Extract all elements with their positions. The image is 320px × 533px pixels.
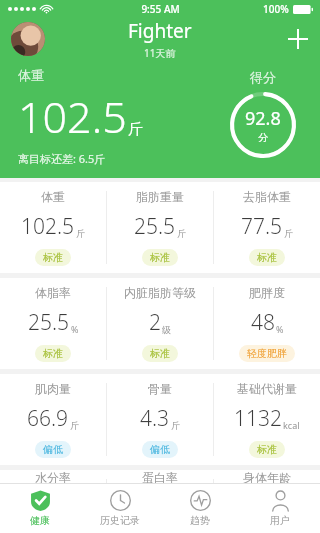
staticText: 11天前 [144,46,176,60]
staticText: 55.2 [28,493,70,522]
staticText: 用户 [270,514,290,527]
button[interactable]: 历史记录 [80,484,160,533]
staticText: 标准 [150,251,170,264]
staticText: 脂肪重量 [136,189,184,204]
staticText: 48 [251,308,275,337]
button[interactable]: Health score 92.8 [230,92,296,158]
staticText: 趋势 [190,514,210,527]
button[interactable]: 肥胖度 [214,278,320,369]
staticText: 标准 [43,251,63,264]
staticText: 标准 [150,347,170,360]
button[interactable]: 趋势 [160,484,240,533]
button[interactable]: 身体年龄 [214,470,320,533]
staticText: 102.5 [21,212,75,241]
staticText: 4.3 [140,404,170,433]
staticText: 100% [263,2,289,16]
staticText: 内脏脂肪等级 [124,285,196,300]
staticText: 偏低 [43,443,63,456]
button[interactable]: 体重 [0,182,106,273]
staticText: 92.8 [245,106,281,131]
button[interactable]: 骨量 [107,374,213,465]
staticText: 斤 [128,120,143,139]
staticText: % [71,323,79,335]
button[interactable]: 内脏脂肪等级 [107,278,213,369]
button[interactable]: 用户 [240,484,320,533]
staticText: 斤 [177,228,186,239]
staticText: 轻度肥胖 [247,347,287,360]
staticText: 健康 [30,514,50,527]
staticText: 2 [149,308,161,337]
button[interactable]: 蛋白率 [107,470,213,533]
staticText: 岁 [275,509,284,520]
staticText: 体重 [18,67,44,83]
staticText: 标准 [43,347,63,360]
staticText: 斤 [70,420,79,431]
button[interactable]: Profile avatar [11,22,45,56]
staticText: 得分 [250,69,276,85]
staticText: 分 [258,131,268,144]
staticText: 偏低 [150,443,170,456]
staticText: 16.8 [135,493,177,522]
button[interactable]: 健康 [0,484,80,533]
staticText: 斤 [76,228,85,239]
button[interactable]: 去脂体重 [214,182,320,273]
staticText: 1132 [234,404,282,433]
staticText: 102.5 [18,87,127,146]
staticText: 离目标还差: 6.5斤 [18,151,106,166]
staticText: 级 [162,324,171,335]
staticText: 25.5 [28,308,70,337]
button[interactable]: 脂肪重量 [107,182,213,273]
button[interactable]: 水分率 [0,470,106,533]
staticText: 历史记录 [100,514,140,527]
staticText: 斤 [171,420,180,431]
staticText: % [276,323,284,335]
staticText: 标准 [257,251,277,264]
staticText: 体重 [41,189,65,204]
staticText: kcal [283,419,300,431]
staticText: 肌肉量 [35,381,71,396]
button[interactable]: 体脂率 [0,278,106,369]
staticText: 身体年龄 [243,470,291,485]
staticText: 肥胖度 [249,285,285,300]
staticText: 25.5 [134,212,176,241]
staticText: 标准 [257,443,277,456]
staticText: 32 [250,493,274,522]
staticText: 骨量 [148,381,172,396]
button[interactable]: Add measurement [276,17,320,61]
staticText: 去脂体重 [243,189,291,204]
button[interactable]: 基础代谢量 [214,374,320,465]
staticText: 基础代谢量 [237,381,297,396]
staticText: 水分率 [35,470,71,485]
staticText: 蛋白率 [142,470,178,485]
staticText: 9:55 AM [141,2,180,16]
staticText: Fighter [128,18,192,44]
staticText: 66.9 [27,404,69,433]
staticText: 77.5 [241,212,283,241]
staticText: 体脂率 [35,285,71,300]
staticText: 斤 [284,228,293,239]
button[interactable]: 肌肉量 [0,374,106,465]
